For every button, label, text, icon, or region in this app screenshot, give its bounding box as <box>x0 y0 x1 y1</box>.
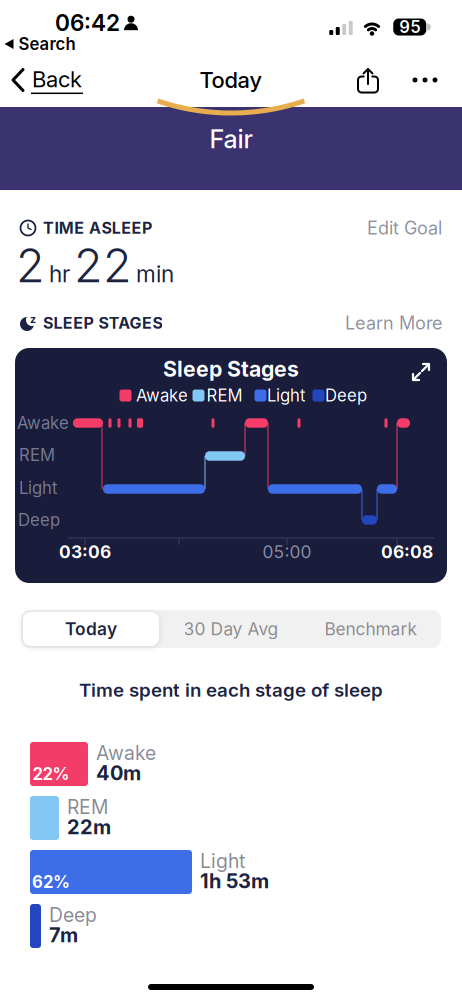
staticText: Learn More <box>345 312 442 334</box>
staticText: Awake <box>17 413 69 433</box>
staticText: 62% <box>32 872 70 892</box>
staticText: Awake <box>96 741 156 765</box>
staticText: min <box>136 260 174 288</box>
staticText: Light <box>200 849 245 873</box>
staticText: Search <box>18 34 75 54</box>
staticText: 30 Day Avg <box>183 618 278 639</box>
staticText: SLEEP STAGES <box>43 313 162 333</box>
staticText: REM <box>206 385 242 406</box>
staticText: 7m <box>49 923 78 947</box>
staticText: 03:06 <box>59 541 111 562</box>
button[interactable]: Back <box>13 66 83 94</box>
staticText: 06:08 <box>381 541 433 562</box>
button[interactable]: Share <box>357 67 379 93</box>
staticText: 40m <box>96 761 141 785</box>
staticText: Benchmark <box>324 618 417 639</box>
staticText: Sleep Stages <box>163 356 299 382</box>
button[interactable]: Today <box>23 612 159 646</box>
button[interactable]: More <box>412 77 437 82</box>
button[interactable]: 30 Day Avg <box>161 610 301 648</box>
staticText: 22% <box>32 764 69 784</box>
staticText: Back <box>32 66 82 92</box>
staticText: Awake <box>136 385 188 406</box>
staticText: 2 <box>16 237 45 293</box>
staticText: REM <box>67 795 108 819</box>
staticText: Edit Goal <box>367 217 442 239</box>
staticText: 05:00 <box>262 541 311 562</box>
staticText: 22 <box>74 237 132 293</box>
staticText: Time spent in each stage of sleep <box>79 679 383 701</box>
button[interactable]: Edit Goal <box>367 217 442 239</box>
staticText: Deep <box>325 385 367 406</box>
staticText: TIME ASLEEP <box>43 218 152 238</box>
staticText: Today <box>199 67 262 93</box>
staticText: 1h 53m <box>200 869 269 893</box>
button[interactable]: Back to Search <box>4 34 75 54</box>
staticText: 95 <box>399 17 420 37</box>
staticText: Light <box>267 385 305 406</box>
staticText: REM <box>19 445 55 465</box>
staticText: 06:42 <box>55 9 120 36</box>
staticText: Today <box>65 618 117 639</box>
staticText: Deep <box>49 903 97 927</box>
button[interactable]: Expand <box>412 363 430 381</box>
staticText: Light <box>19 478 57 498</box>
staticText: z <box>30 312 36 325</box>
staticText: 22m <box>67 815 111 839</box>
staticText: Deep <box>18 510 60 530</box>
staticText: hr <box>49 260 70 288</box>
staticText: Fair <box>209 124 252 154</box>
button[interactable]: Benchmark <box>301 610 441 648</box>
button[interactable]: Learn More <box>345 312 442 334</box>
